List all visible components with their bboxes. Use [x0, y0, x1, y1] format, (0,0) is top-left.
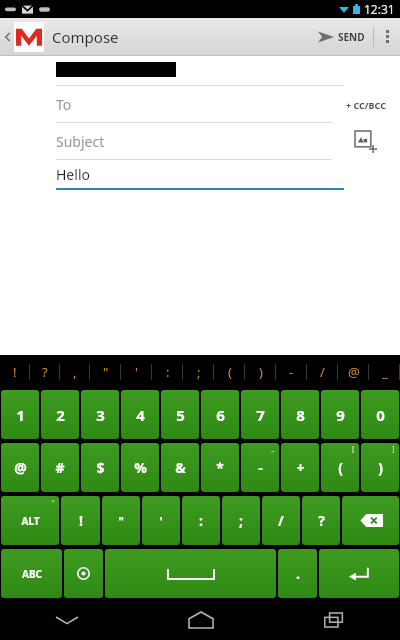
- button[interactable]: Up: [3, 22, 119, 52]
- staticText: ": [103, 363, 109, 381]
- button[interactable]: :: [182, 496, 220, 545]
- staticText: ALT: [21, 514, 40, 528]
- button[interactable]: 0: [361, 390, 399, 439]
- button[interactable]: /: [262, 496, 300, 545]
- staticText: ): [259, 363, 263, 381]
- staticText: .: [296, 564, 300, 583]
- button[interactable]: Enter: [319, 549, 399, 598]
- button[interactable]: Attach image: [332, 123, 400, 160]
- button[interactable]: $: [81, 443, 119, 492]
- staticText: ?: [318, 511, 325, 530]
- staticText: *: [216, 458, 224, 477]
- button[interactable]: #: [41, 443, 79, 492]
- button[interactable]: .: [278, 549, 317, 598]
- staticText: 5: [176, 405, 185, 425]
- button[interactable]: ): [245, 355, 276, 388]
- button[interactable]: ?: [30, 355, 60, 388]
- staticText: /: [320, 363, 325, 381]
- staticText: ,: [73, 363, 77, 381]
- staticText: +: [296, 458, 305, 477]
- button[interactable]: Space: [105, 549, 276, 598]
- button[interactable]: %: [121, 443, 159, 492]
- staticText: _: [271, 444, 275, 454]
- staticText: ?: [42, 363, 48, 381]
- button[interactable]: ;: [222, 496, 260, 545]
- button[interactable]: ;: [183, 355, 214, 388]
- staticText: %: [134, 458, 147, 477]
- staticText: 12:31: [364, 1, 395, 17]
- staticText: Subject: [56, 132, 105, 151]
- staticText: (: [228, 363, 232, 381]
- button[interactable]: Hide keyboard: [0, 600, 134, 640]
- button[interactable]: 5: [161, 390, 199, 439]
- button[interactable]: 4: [121, 390, 159, 439]
- staticText: :: [199, 511, 203, 530]
- staticText: -: [258, 458, 263, 477]
- staticText: :: [166, 363, 170, 381]
- button[interactable]: SEND: [318, 18, 365, 55]
- button[interactable]: Keyboard settings: [64, 549, 103, 598]
- button[interactable]: 9: [321, 390, 359, 439]
- staticText: Hello: [56, 165, 90, 184]
- button[interactable]: 8: [281, 390, 319, 439]
- button[interactable]: ': [121, 355, 152, 388]
- staticText: ABC: [22, 567, 42, 581]
- staticText: •: [52, 497, 55, 507]
- staticText: 7: [256, 405, 265, 425]
- button[interactable]: Recent apps: [267, 600, 400, 640]
- button[interactable]: 7: [241, 390, 279, 439]
- button[interactable]: ]: [361, 443, 399, 492]
- button[interactable]: _: [241, 443, 279, 492]
- staticText: + CC/BCC: [346, 99, 386, 111]
- staticText: 4: [136, 405, 145, 425]
- staticText: /: [278, 511, 284, 530]
- button[interactable]: 1: [1, 390, 39, 439]
- staticText: 0: [376, 405, 385, 425]
- button[interactable]: Backspace: [342, 496, 399, 545]
- staticText: ": [118, 513, 124, 529]
- button[interactable]: Hello: [56, 160, 344, 188]
- button[interactable]: ,: [60, 355, 90, 388]
- button[interactable]: To: [56, 86, 332, 123]
- button[interactable]: ABC: [1, 549, 62, 598]
- button[interactable]: 3: [81, 390, 119, 439]
- button[interactable]: /: [307, 355, 338, 388]
- staticText: #: [55, 458, 65, 477]
- button[interactable]: !: [61, 496, 100, 545]
- staticText: ]: [392, 444, 395, 454]
- button[interactable]: _: [369, 355, 400, 388]
- button[interactable]: •: [1, 496, 59, 545]
- button[interactable]: ?: [302, 496, 340, 545]
- button[interactable]: + CC/BCC: [332, 86, 400, 123]
- button[interactable]: More options: [374, 18, 400, 55]
- button[interactable]: (: [214, 355, 245, 388]
- staticText: ;: [239, 511, 243, 530]
- button[interactable]: ": [102, 496, 140, 545]
- staticText: SEND: [338, 30, 365, 44]
- button[interactable]: +: [281, 443, 319, 492]
- button[interactable]: [: [321, 443, 359, 492]
- button[interactable]: 6: [201, 390, 239, 439]
- button[interactable]: ': [142, 496, 180, 545]
- staticText: 2: [56, 405, 65, 425]
- staticText: 1: [16, 405, 25, 425]
- button[interactable]: 2: [41, 390, 79, 439]
- staticText: (: [338, 458, 343, 477]
- button[interactable]: @: [338, 355, 369, 388]
- button[interactable]: -: [276, 355, 307, 388]
- button[interactable]: Subject: [56, 123, 332, 160]
- button[interactable]: *: [201, 443, 239, 492]
- staticText: ;: [197, 363, 201, 381]
- staticText: ': [135, 363, 138, 381]
- staticText: To: [56, 95, 72, 114]
- button[interactable]: &: [161, 443, 199, 492]
- button[interactable]: Home: [134, 600, 267, 640]
- staticText: -: [289, 363, 294, 381]
- button[interactable]: !: [0, 355, 30, 388]
- button[interactable]: :: [152, 355, 183, 388]
- staticText: _: [382, 363, 388, 381]
- button[interactable]: @: [1, 443, 39, 492]
- button[interactable]: ": [90, 355, 121, 388]
- staticText: Compose: [52, 27, 119, 47]
